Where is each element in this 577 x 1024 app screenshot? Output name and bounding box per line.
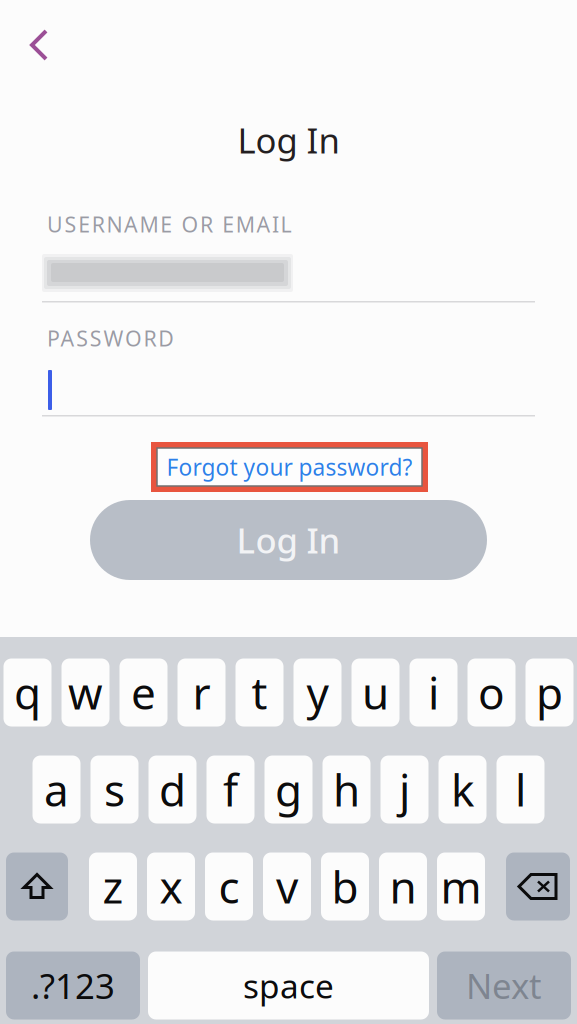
- button[interactable]: space: [148, 951, 429, 1019]
- button[interactable]: u: [351, 658, 399, 726]
- button[interactable]: s: [90, 755, 138, 823]
- staticText: b: [331, 857, 358, 916]
- button[interactable]: o: [467, 658, 515, 726]
- staticText: a: [44, 760, 69, 819]
- button[interactable]: j: [380, 755, 428, 823]
- staticText: e: [131, 663, 156, 722]
- staticText: Log In: [236, 517, 340, 563]
- button[interactable]: e: [119, 658, 167, 726]
- button[interactable]: p: [525, 658, 573, 726]
- staticText: k: [451, 760, 474, 819]
- button[interactable]: Back: [12, 18, 66, 72]
- button[interactable]: b: [321, 852, 369, 920]
- button[interactable]: t: [235, 658, 283, 726]
- staticText: c: [218, 857, 239, 916]
- button[interactable]: Shift: [6, 852, 68, 920]
- staticText: .?123: [31, 962, 115, 1008]
- staticText: Next: [466, 962, 542, 1008]
- button[interactable]: m: [437, 852, 485, 920]
- button[interactable]: h: [322, 755, 370, 823]
- button[interactable]: Delete: [506, 852, 570, 920]
- button[interactable]: r: [177, 658, 225, 726]
- button[interactable]: f: [206, 755, 254, 823]
- button[interactable]: c: [205, 852, 253, 920]
- staticText: j: [399, 760, 410, 819]
- staticText: USERNAME OR EMAIL: [47, 210, 292, 238]
- staticText: y: [306, 663, 328, 722]
- staticText: g: [275, 760, 302, 819]
- button[interactable]: l: [496, 755, 544, 823]
- staticText: space: [243, 963, 334, 1008]
- staticText: Forgot your password?: [166, 452, 412, 482]
- button[interactable]: Next: [437, 951, 571, 1019]
- staticText: h: [333, 760, 360, 819]
- staticText: u: [362, 663, 389, 722]
- button[interactable]: .?123: [6, 951, 140, 1019]
- button[interactable]: g: [264, 755, 312, 823]
- button[interactable]: Forgot your password?: [151, 442, 428, 492]
- button[interactable]: q: [3, 658, 51, 726]
- button[interactable]: y: [293, 658, 341, 726]
- button[interactable]: d: [148, 755, 196, 823]
- staticText: v: [276, 857, 298, 916]
- staticText: w: [68, 663, 103, 722]
- button[interactable]: n: [379, 852, 427, 920]
- staticText: s: [104, 760, 125, 819]
- staticText: t: [251, 663, 267, 722]
- staticText: r: [192, 663, 210, 722]
- staticText: z: [102, 857, 123, 916]
- button[interactable]: w: [61, 658, 109, 726]
- button[interactable]: k: [438, 755, 486, 823]
- staticText: x: [159, 857, 182, 916]
- staticText: d: [159, 760, 186, 819]
- staticText: l: [515, 760, 526, 819]
- staticText: f: [223, 760, 238, 819]
- staticText: i: [428, 663, 439, 722]
- button[interactable]: a: [32, 755, 80, 823]
- button[interactable]: v: [263, 852, 311, 920]
- staticText: p: [536, 663, 563, 722]
- button[interactable]: z: [89, 852, 137, 920]
- staticText: n: [389, 857, 416, 916]
- staticText: PASSWORD: [47, 324, 174, 352]
- staticText: Log In: [237, 117, 339, 163]
- button[interactable]: Log In: [90, 500, 487, 580]
- staticText: m: [440, 857, 481, 916]
- button[interactable]: x: [147, 852, 195, 920]
- button[interactable]: i: [409, 658, 457, 726]
- staticText: o: [478, 663, 505, 722]
- staticText: q: [14, 663, 41, 722]
